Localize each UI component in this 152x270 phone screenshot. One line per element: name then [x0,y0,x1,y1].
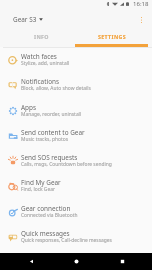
button[interactable]: Send SOS requests [0,148,152,173]
staticText: Connected via Bluetooth [21,212,78,219]
button[interactable]: Gear connection [0,199,152,224]
staticText: Stylize, add, uninstall [21,60,70,67]
staticText: Quick responses, Call-decline messages [21,237,112,244]
staticText: Find, lock Gear [21,186,55,193]
button[interactable]: SETTINGS [77,31,148,47]
button[interactable]: INFO [6,31,77,47]
staticText: SETTINGS [98,33,127,40]
button[interactable]: Quick messages [0,224,152,249]
button[interactable]: Back [16,253,46,270]
button[interactable]: Watch faces [0,47,152,72]
button[interactable]: Find My Gear [0,173,152,198]
staticText: Send SOS requests [21,153,78,162]
staticText: Gear connection [21,204,71,213]
button[interactable]: Home [61,253,91,270]
staticText: 16:18 [133,0,149,7]
staticText: Calls, msgs, Countdown before sending [21,161,112,168]
staticText: Apps [21,103,37,112]
button[interactable]: Send content to Gear [0,123,152,148]
staticText: Notifications [21,77,60,86]
staticText: Block, allow, Auto show details [21,85,91,92]
staticText: Quick messages [21,229,70,238]
button[interactable]: Apps [0,98,152,123]
staticText: Watch faces [21,52,57,61]
staticText: Find My Gear [21,178,61,187]
staticText: INFO [34,33,49,40]
button[interactable]: More options [134,11,152,31]
staticText: Manage, reorder, uninstall [21,111,82,118]
staticText: Music tracks, photos [21,136,69,143]
staticText: Send content to Gear [21,128,85,137]
staticText: Gear S3 [13,15,37,24]
button[interactable]: Recents [107,253,137,270]
button[interactable]: Notifications [0,72,152,97]
